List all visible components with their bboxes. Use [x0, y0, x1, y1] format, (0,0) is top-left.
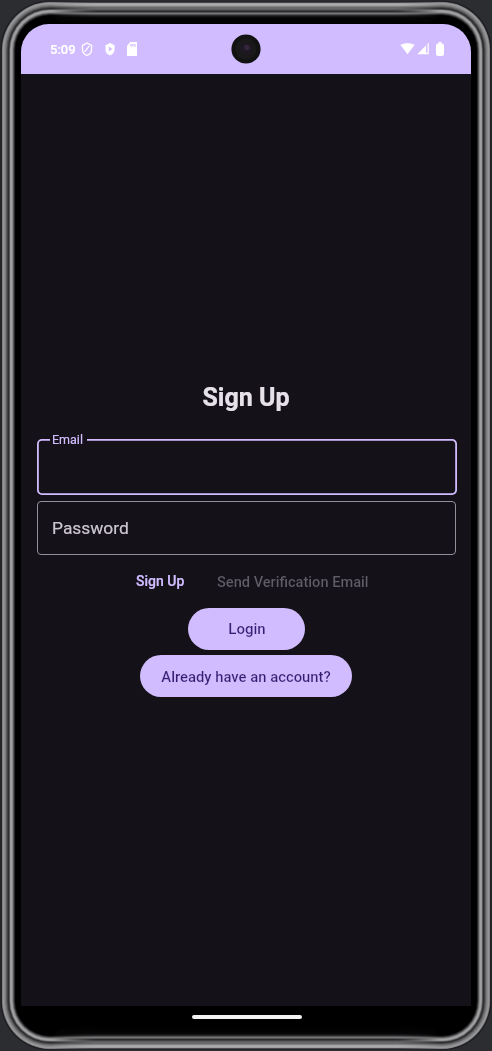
staticText: Sign Up [136, 573, 185, 589]
staticText: Already have an account? [161, 668, 331, 685]
button[interactable]: Password [37, 501, 456, 555]
button[interactable]: Send Verification Email [205, 567, 381, 596]
staticText: Sign Up [21, 383, 471, 412]
staticText: Password [52, 518, 129, 538]
button[interactable]: Login [188, 608, 305, 650]
staticText: Send Verification Email [217, 573, 369, 590]
button[interactable]: Email [37, 439, 457, 495]
button[interactable]: Sign Up [124, 567, 197, 595]
button[interactable]: Already have an account? [140, 655, 352, 697]
staticText: Login [228, 620, 266, 638]
staticText: 5:09 [50, 42, 76, 57]
staticText: Email [52, 432, 83, 447]
